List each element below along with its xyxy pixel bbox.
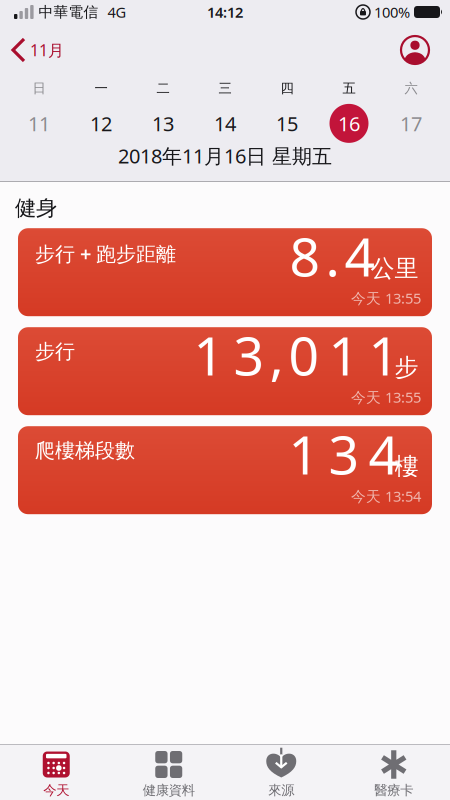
button[interactable]: 今天 xyxy=(0,745,112,798)
staticText: 今天 13:54 xyxy=(351,486,421,506)
staticText: 五 xyxy=(342,80,355,96)
staticText: 今天 13:55 xyxy=(351,288,421,308)
button[interactable]: 來源 xyxy=(225,745,337,798)
staticText: 8 . 4 xyxy=(289,220,375,291)
staticText: 16 xyxy=(338,110,360,137)
button[interactable]: 步行 + 跑步距離 xyxy=(18,228,432,316)
staticText: 醫療卡 xyxy=(374,782,413,798)
staticText: 步 xyxy=(394,353,418,382)
staticText: 樓 xyxy=(394,452,418,481)
staticText: 11 xyxy=(28,110,50,137)
button[interactable]: 17 xyxy=(380,104,442,142)
staticText: 四 xyxy=(280,80,293,96)
button[interactable]: 醫療卡 xyxy=(337,745,450,798)
staticText: 2018年11月16日 星期五 xyxy=(118,142,332,169)
button[interactable]: 15 xyxy=(256,104,318,142)
staticText: 13 xyxy=(152,110,174,137)
staticText: 步行 xyxy=(35,339,75,364)
button[interactable]: 13 xyxy=(132,104,194,142)
staticText: 健康資料 xyxy=(143,782,195,798)
button[interactable]: 步行 xyxy=(18,327,432,415)
button[interactable]: 14 xyxy=(194,104,256,142)
staticText: 17 xyxy=(400,110,422,137)
staticText: 今天 xyxy=(43,782,69,798)
staticText: 日 xyxy=(32,80,45,96)
staticText: 公里 xyxy=(370,254,418,283)
button[interactable]: 個人檔案 xyxy=(401,36,450,64)
staticText: 100% xyxy=(374,2,410,22)
button[interactable]: 12 xyxy=(70,104,132,142)
staticText: 六 xyxy=(404,80,417,96)
staticText: 4G xyxy=(108,2,127,22)
staticText: 步行 + 跑步距離 xyxy=(35,240,176,267)
staticText: 12 xyxy=(90,110,112,137)
staticText: 1 3 4 xyxy=(288,418,399,489)
button[interactable]: 11 xyxy=(8,104,70,142)
button[interactable]: 健康資料 xyxy=(112,745,225,798)
button[interactable]: 16 xyxy=(318,104,380,142)
staticText: 來源 xyxy=(268,782,294,798)
staticText: 二 xyxy=(156,80,169,96)
staticText: 一 xyxy=(94,80,107,96)
staticText: 爬樓梯段數 xyxy=(35,438,135,463)
staticText: 今天 13:55 xyxy=(351,387,421,407)
button[interactable]: 11月 xyxy=(0,39,64,61)
staticText: 14 xyxy=(214,110,236,137)
staticText: 三 xyxy=(218,80,231,96)
button[interactable]: 爬樓梯段數 xyxy=(18,426,432,514)
staticText: 健身 xyxy=(15,195,57,221)
staticText: 中華電信 xyxy=(39,3,99,21)
staticText: 11月 xyxy=(30,39,64,61)
staticText: 14:12 xyxy=(207,2,243,22)
staticText: 1 3 , 0 1 1 xyxy=(193,319,399,390)
staticText: 15 xyxy=(276,110,298,137)
